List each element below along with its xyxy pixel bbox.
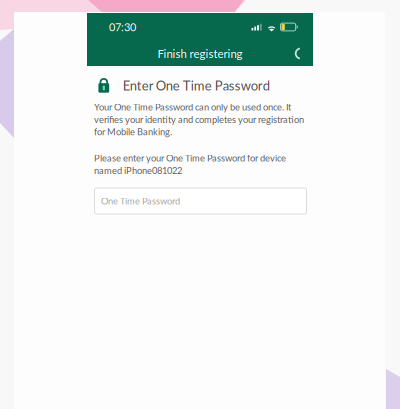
staticText: Please enter your One Time Password for … (94, 152, 286, 176)
button[interactable]: Loading (291, 44, 305, 62)
staticText: Enter One Time Password (123, 78, 270, 93)
staticText: One Time Password (101, 195, 180, 207)
staticText: 07:30 (109, 20, 136, 33)
staticText: Your One Time Password can only be used … (94, 101, 304, 137)
button[interactable]: One Time Password (94, 188, 306, 214)
staticText: Finish registering (157, 47, 242, 60)
